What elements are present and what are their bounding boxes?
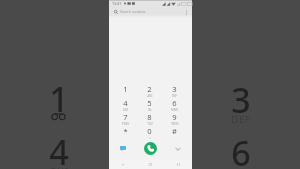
staticText: + — [149, 136, 151, 139]
button[interactable]: 8 — [137, 111, 162, 125]
staticText: 0 — [147, 126, 152, 136]
staticText: 1 — [123, 84, 128, 94]
staticText: 9 — [172, 112, 177, 122]
staticText: 6 — [172, 98, 177, 108]
staticText: DEF — [231, 113, 251, 126]
staticText: 2 — [147, 84, 152, 94]
staticText: 13:41 — [112, 1, 122, 6]
button[interactable]: More options — [183, 9, 189, 15]
staticText: GHI — [49, 165, 69, 169]
staticText: 5 — [147, 98, 152, 108]
staticText: 4 — [123, 98, 128, 108]
button[interactable]: 9 — [162, 111, 187, 125]
staticText: 7 — [123, 112, 128, 122]
staticText: Search contacts — [120, 9, 146, 14]
button[interactable]: 3 — [162, 83, 187, 97]
button[interactable]: * — [113, 125, 137, 139]
staticText: TUV — [147, 122, 153, 125]
staticText: * — [123, 126, 128, 136]
button[interactable]: 4 — [113, 97, 137, 111]
button[interactable]: 0 — [137, 125, 162, 139]
staticText: JKL — [148, 108, 152, 111]
staticText: # — [172, 126, 177, 136]
button[interactable]: Home — [136, 159, 164, 169]
button[interactable]: Call — [136, 139, 164, 158]
staticText: 1 — [49, 76, 69, 122]
staticText: 6 — [231, 130, 251, 169]
button[interactable]: Search contacts — [109, 7, 192, 16]
staticText: 8 — [147, 112, 152, 122]
staticText: DEF — [172, 94, 177, 97]
staticText: WXYZ — [171, 122, 179, 125]
staticText: ABC — [147, 94, 153, 97]
button[interactable]: Hide dialpad — [164, 139, 192, 158]
button[interactable]: 6 — [162, 97, 187, 111]
button[interactable]: # — [162, 125, 187, 139]
button[interactable]: 5 — [137, 97, 162, 111]
button[interactable]: 2 — [137, 83, 162, 97]
button[interactable]: Message — [109, 139, 136, 158]
button[interactable]: 7 — [113, 111, 137, 125]
staticText: PQRS — [122, 122, 129, 125]
staticText: 3 — [172, 84, 177, 94]
button[interactable]: Recent apps — [164, 159, 192, 169]
button[interactable]: 1 — [113, 83, 137, 97]
staticText: 4 — [49, 129, 69, 169]
staticText: MNO — [171, 108, 178, 111]
staticText: 3 — [231, 77, 251, 123]
staticText: GHI — [123, 108, 128, 111]
